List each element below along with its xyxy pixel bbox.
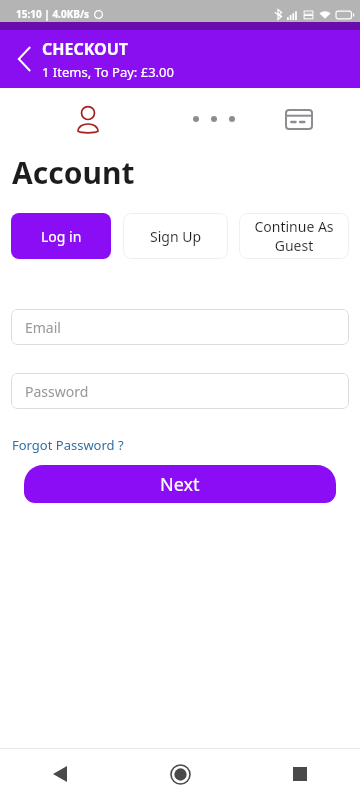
staticText: Email: [25, 318, 61, 337]
staticText: CHECKOUT: [42, 38, 129, 60]
button[interactable]: Sign Up: [123, 213, 228, 259]
staticText: Forgot Password ?: [12, 436, 124, 454]
button[interactable]: Back: [6, 41, 42, 77]
button[interactable]: Recent apps: [240, 748, 360, 800]
staticText: Next: [160, 472, 200, 497]
button[interactable]: Home: [120, 748, 240, 800]
staticText: Sign Up: [150, 227, 202, 246]
button[interactable]: Back: [0, 748, 120, 800]
button[interactable]: Continue As Guest: [239, 213, 349, 259]
button[interactable]: Password: [11, 373, 349, 409]
staticText: Continue As Guest: [247, 217, 341, 255]
staticText: Password: [25, 382, 89, 401]
staticText: 15:10 | 4.0KB/s: [16, 7, 90, 21]
button[interactable]: Email: [11, 309, 349, 345]
button[interactable]: Forgot Password ?: [12, 434, 124, 456]
button[interactable]: Payment step: [281, 101, 317, 137]
button[interactable]: Next: [24, 465, 336, 503]
staticText: 1 Items, To Pay: £3.00: [42, 63, 174, 81]
button[interactable]: Account step: [70, 101, 106, 137]
staticText: Account: [12, 152, 135, 193]
button[interactable]: Log in: [11, 213, 111, 259]
staticText: Log in: [41, 227, 82, 246]
